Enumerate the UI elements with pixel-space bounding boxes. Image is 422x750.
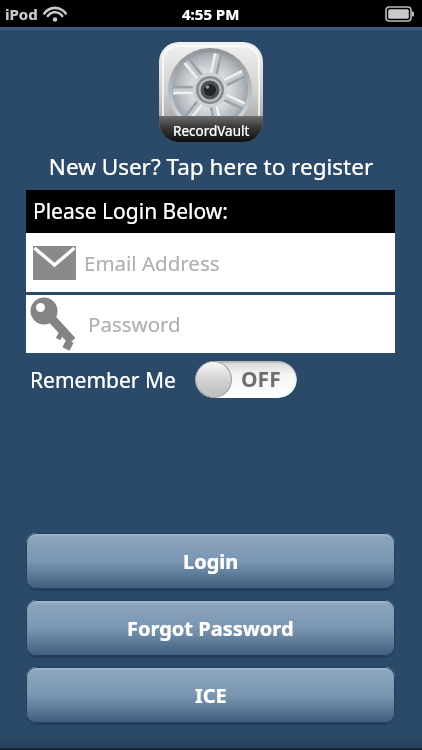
button[interactable]: Email Address [26, 233, 395, 292]
button[interactable]: OFF [195, 361, 297, 398]
staticText: ICE [195, 682, 227, 709]
button[interactable]: RecordVault [159, 42, 263, 142]
staticText: Login [183, 548, 239, 575]
staticText: OFF [241, 365, 281, 394]
button[interactable]: Forgot Password [26, 600, 395, 656]
staticText: Remember Me [30, 366, 176, 395]
staticText: 4:55 PM [182, 4, 240, 24]
button[interactable]: New User? Tap here to register [0, 151, 422, 182]
staticText: iPod [5, 4, 38, 24]
staticText: Forgot Password [127, 615, 294, 642]
staticText: RecordVault [173, 122, 250, 140]
staticText: Email Address [84, 249, 220, 277]
button[interactable]: Password [26, 295, 395, 353]
staticText: Password [88, 310, 181, 338]
button[interactable]: ICE [26, 667, 395, 723]
button[interactable]: Login [26, 533, 395, 589]
staticText: Please Login Below: [33, 197, 228, 226]
